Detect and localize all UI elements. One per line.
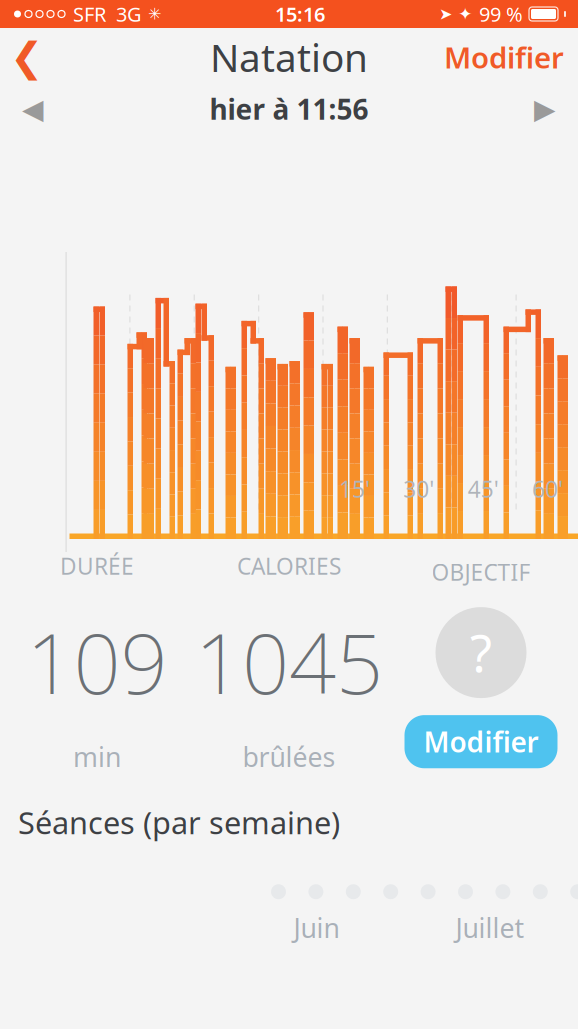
staticText: Juin [293, 910, 339, 945]
staticText: 109 [26, 607, 167, 717]
staticText: ✳ [148, 5, 161, 23]
button[interactable]: Séance précédente [0, 86, 66, 132]
staticText: min [73, 739, 121, 774]
staticText: 15' [339, 474, 370, 504]
staticText: ❮ [10, 34, 44, 80]
button[interactable]: Séance suivante [512, 86, 578, 132]
staticText: ➤ [439, 5, 452, 23]
staticText: 45' [468, 474, 499, 504]
staticText: SFR [73, 1, 106, 27]
staticText: Modifier [423, 723, 538, 760]
button[interactable]: Retour [0, 28, 54, 86]
staticText: DURÉE [60, 551, 134, 581]
staticText: brûlées [242, 739, 335, 774]
staticText: Juillet [455, 910, 524, 945]
staticText: Modifier [444, 37, 564, 76]
staticText: 60' [532, 474, 563, 504]
staticText: CALORIES [237, 551, 341, 581]
staticText: ◀ [22, 93, 44, 125]
staticText: hier à 11:56 [209, 90, 368, 128]
staticText: OBJECTIF [431, 557, 530, 587]
staticText: ? [470, 619, 492, 686]
staticText: ✦ [458, 4, 473, 24]
button[interactable]: Modifier [430, 28, 578, 86]
staticText: 99 % [479, 1, 523, 27]
staticText: 30' [403, 474, 434, 504]
button[interactable]: Modifier [404, 715, 557, 768]
staticText: Natation [210, 31, 368, 83]
staticText: 1045 [195, 607, 383, 717]
staticText: ▶ [534, 93, 556, 125]
staticText: 3G [116, 1, 142, 27]
staticText: 15:16 [275, 1, 325, 27]
staticText: Séances (par semaine) [18, 802, 340, 843]
